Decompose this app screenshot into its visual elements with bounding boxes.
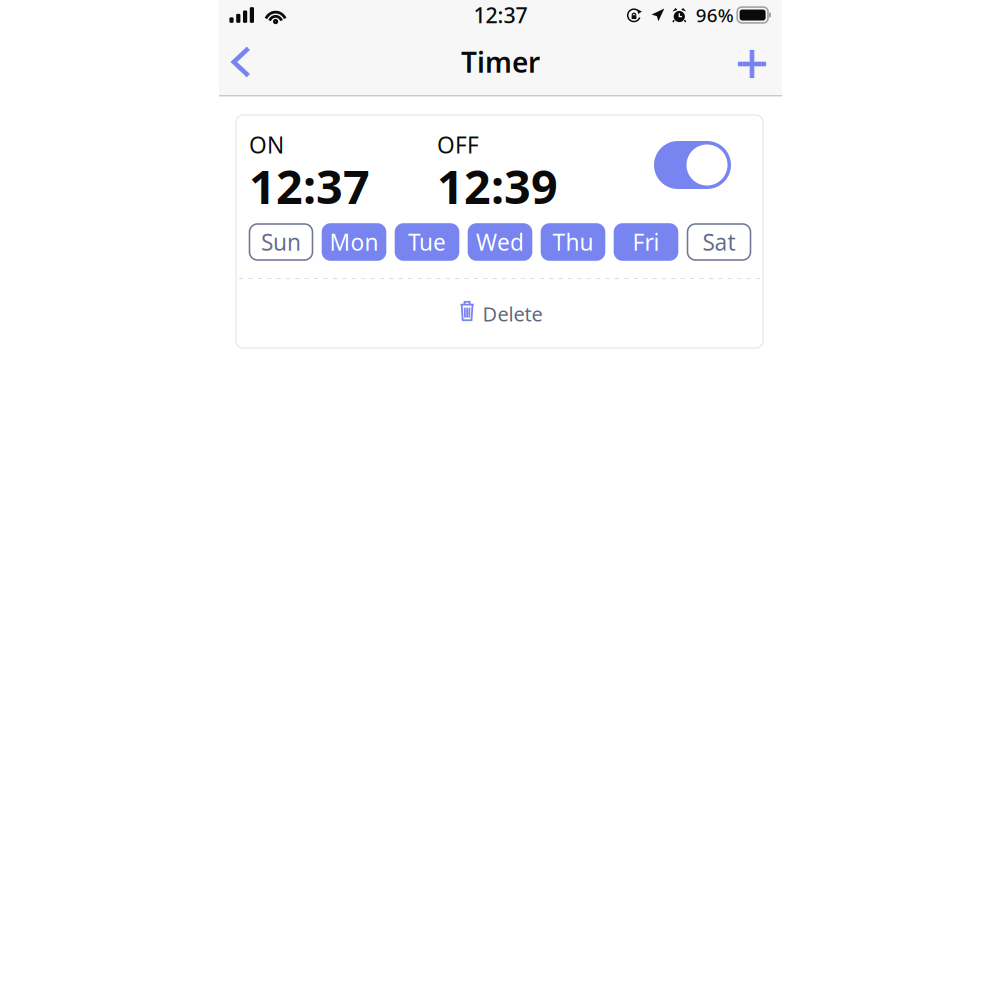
- button[interactable]: Back: [219, 38, 263, 86]
- button[interactable]: Fri: [614, 224, 677, 260]
- button[interactable]: Timer on: [654, 141, 731, 189]
- staticText: Thu: [552, 227, 593, 257]
- staticText: Mon: [329, 227, 378, 257]
- staticText: 96%: [696, 3, 734, 27]
- button[interactable]: Thu: [541, 224, 604, 260]
- staticText: Delete: [482, 300, 542, 327]
- staticText: Sun: [261, 227, 301, 257]
- staticText: Wed: [476, 227, 524, 257]
- button[interactable]: Mon: [322, 224, 385, 260]
- staticText: Tue: [408, 227, 446, 257]
- staticText: 12:37: [249, 155, 370, 217]
- staticText: Sat: [702, 227, 735, 257]
- button[interactable]: Tue: [395, 224, 458, 260]
- button[interactable]: Wed: [468, 224, 531, 260]
- button[interactable]: Sat: [687, 224, 750, 260]
- staticText: Timer: [461, 43, 540, 81]
- button[interactable]: Add timer: [730, 40, 774, 88]
- staticText: 12:39: [437, 155, 558, 217]
- staticText: 12:37: [473, 1, 527, 29]
- staticText: Fri: [632, 227, 659, 257]
- button[interactable]: Sun: [249, 224, 312, 260]
- button[interactable]: Delete: [236, 279, 763, 348]
- staticText: ON: [249, 130, 284, 160]
- staticText: OFF: [437, 130, 479, 160]
